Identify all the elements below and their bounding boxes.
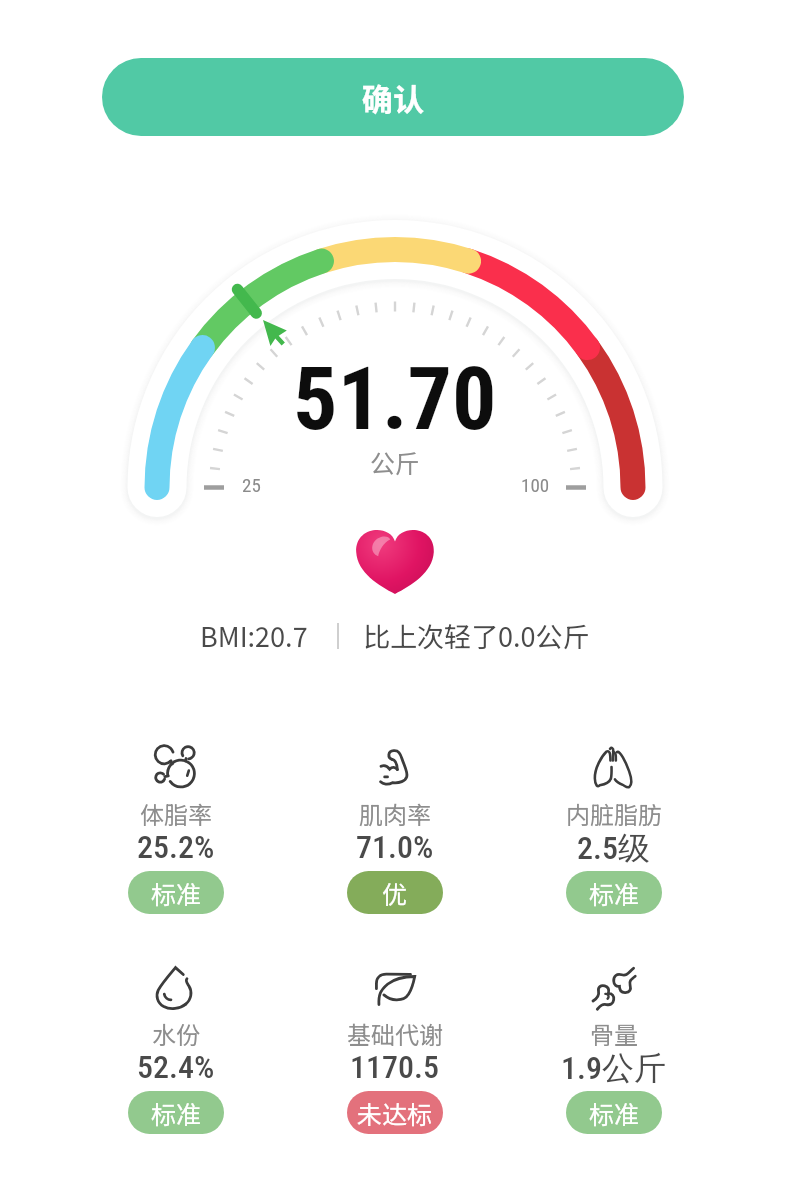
staticText: 比上次轻了0.0公斤	[363, 616, 590, 655]
staticText: 水份	[152, 1016, 200, 1051]
staticText: 骨量	[590, 1016, 638, 1051]
button[interactable]: 骨量	[504, 967, 723, 1157]
staticText: BMI:20.7	[200, 616, 308, 655]
button[interactable]: 肌肉率	[285, 747, 504, 937]
staticText: 肌肉率	[359, 796, 431, 831]
staticText: 100	[521, 474, 550, 496]
button[interactable]: 体脂率	[67, 747, 285, 937]
staticText: 标准	[589, 1095, 640, 1131]
button[interactable]: 标准	[128, 871, 224, 914]
staticText: 1170.5	[350, 1048, 439, 1086]
button[interactable]: 基础代谢	[285, 967, 504, 1157]
button[interactable]: 未达标	[347, 1091, 443, 1134]
staticText: 52.4%	[137, 1048, 215, 1086]
button[interactable]: 内脏脂肪	[504, 747, 723, 937]
button[interactable]: 确认	[102, 58, 684, 136]
button[interactable]: 标准	[128, 1091, 224, 1134]
staticText: 确认	[362, 75, 424, 120]
button[interactable]: 标准	[566, 871, 662, 914]
button[interactable]: 标准	[566, 1091, 662, 1134]
other: 基础代谢	[374, 967, 415, 1008]
other: 体脂率	[156, 747, 197, 788]
other: 肌肉率	[374, 747, 415, 788]
staticText: 51.70	[293, 347, 497, 450]
staticText: 25	[242, 474, 261, 496]
staticText: 标准	[151, 1095, 202, 1131]
staticText: 优	[382, 875, 408, 911]
staticText: 25.2%	[137, 828, 215, 866]
other: 内脏脂肪	[593, 747, 634, 788]
staticText: 2.5级	[577, 828, 650, 868]
other: 水份	[156, 967, 197, 1008]
button[interactable]: 优	[347, 871, 443, 914]
staticText: 标准	[151, 875, 202, 911]
staticText: 标准	[589, 875, 640, 911]
staticText: 公斤	[370, 444, 421, 480]
staticText: 71.0%	[356, 828, 434, 866]
staticText: 基础代谢	[347, 1016, 443, 1051]
staticText: 体脂率	[140, 796, 212, 831]
button[interactable]: 水份	[67, 967, 285, 1157]
staticText: 内脏脂肪	[566, 796, 662, 831]
staticText: 未达标	[357, 1095, 433, 1131]
other: 骨量	[593, 967, 634, 1008]
staticText: 1.9公斤	[561, 1048, 666, 1088]
